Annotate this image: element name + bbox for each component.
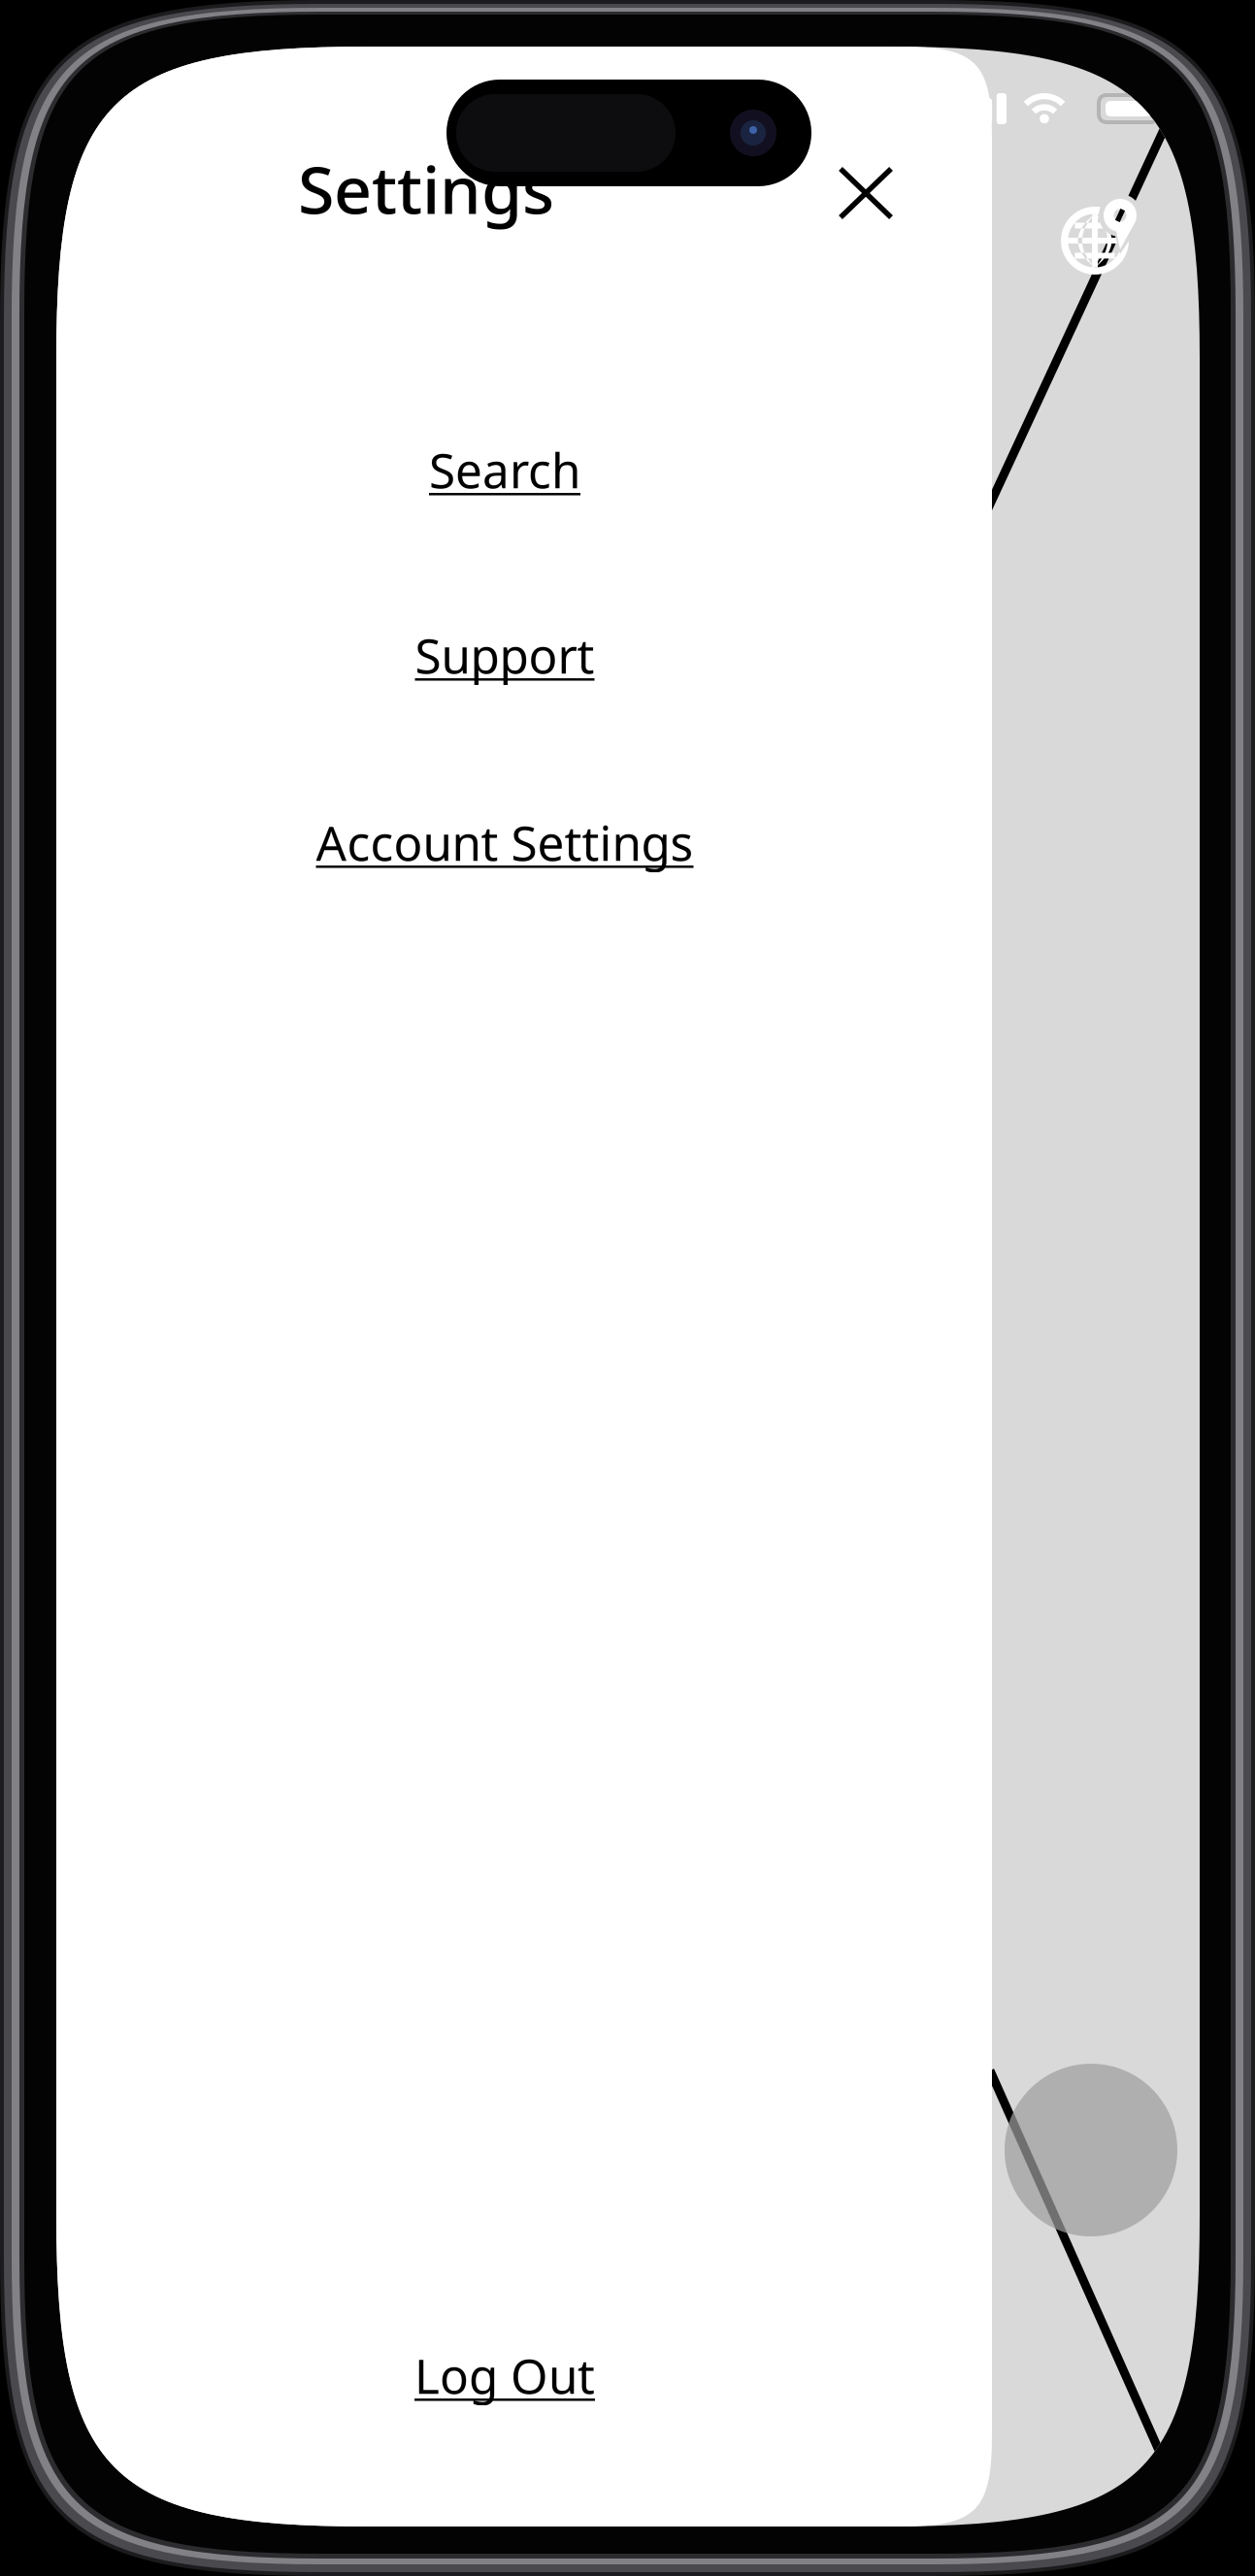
staticText: Support xyxy=(415,623,594,687)
button[interactable]: Support xyxy=(107,625,903,685)
staticText: Account Settings xyxy=(316,810,694,874)
staticText: Log Out xyxy=(414,2343,595,2407)
button[interactable]: Log Out xyxy=(107,2345,903,2405)
button[interactable]: Account Settings xyxy=(107,812,903,872)
staticText: Settings xyxy=(298,145,554,232)
button[interactable]: Search xyxy=(107,440,903,500)
button[interactable]: Close xyxy=(808,136,924,250)
staticText: Search xyxy=(429,438,580,501)
